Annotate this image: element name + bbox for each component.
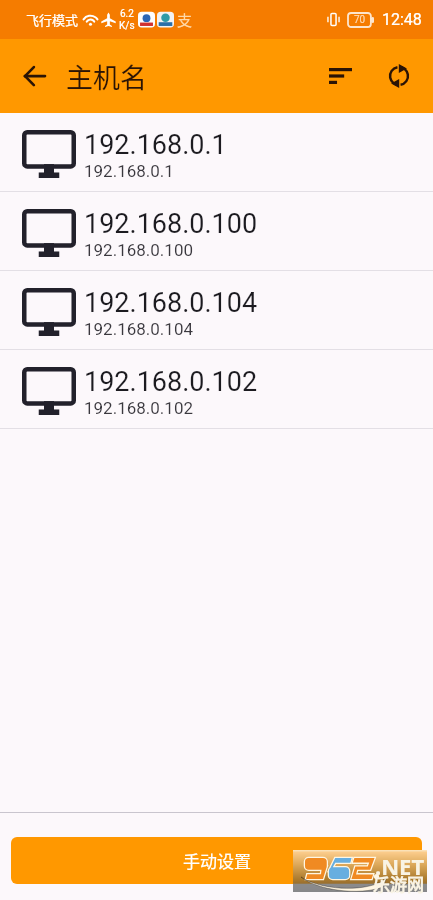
staticText: 192.168.0.102 — [84, 398, 193, 418]
staticText: 飞行模式 — [26, 10, 79, 29]
staticText: 192.168.0.102 — [84, 366, 258, 398]
button[interactable]: Back — [8, 50, 60, 102]
staticText: 主机名 — [66, 57, 147, 96]
staticText: 192.168.0.1 — [84, 129, 227, 161]
button[interactable]: 手动设置 — [11, 837, 422, 884]
button[interactable]: 192.168.0.1 — [0, 113, 433, 192]
staticText: 192.168.0.1 — [84, 161, 174, 181]
staticText: 192.168.0.104 — [84, 287, 258, 319]
staticText: 乐游网 — [373, 871, 424, 896]
staticText: 12:48 — [382, 10, 422, 29]
staticText: K/s — [119, 20, 135, 32]
staticText: 192.168.0.100 — [84, 240, 193, 260]
staticText: 192.168.0.104 — [84, 319, 193, 339]
staticText: .NET — [375, 851, 425, 881]
staticText: 手动设置 — [183, 848, 251, 873]
staticText: 6.2 — [120, 8, 134, 20]
button[interactable]: 192.168.0.102 — [0, 350, 433, 429]
staticText: 支 — [177, 9, 193, 31]
button[interactable]: 192.168.0.100 — [0, 192, 433, 271]
button[interactable]: Refresh — [374, 51, 424, 101]
staticText: 70 — [354, 14, 366, 26]
button[interactable]: Sort — [315, 51, 365, 101]
button[interactable]: 192.168.0.104 — [0, 271, 433, 350]
staticText: 192.168.0.100 — [84, 208, 258, 240]
